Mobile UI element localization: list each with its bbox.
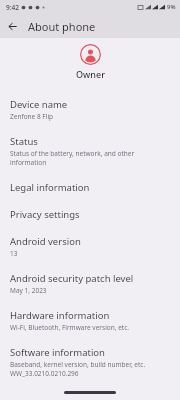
staticText: Wi-Fi, Bluetooth, Firmware version, etc. [10,323,130,332]
button[interactable]: User avatar [80,44,101,65]
staticText: Owner [76,68,105,80]
staticText: May 1, 2023 [10,286,47,295]
staticText: About phone [28,19,96,34]
staticText: Device name [10,98,68,111]
button[interactable]: Android version [0,228,180,265]
staticText: 9:42 [6,3,19,12]
staticText: Baseband, kernel version, build number, … [10,360,146,378]
button[interactable]: Legal information [0,174,180,201]
button[interactable]: Hardware information [0,302,180,339]
staticText: Android version [10,235,81,248]
button[interactable]: Software information [0,339,180,385]
button[interactable]: Privacy settings [0,201,180,228]
button[interactable]: Android security patch level [0,265,180,302]
button[interactable]: Back [3,17,21,35]
button[interactable]: Status [0,128,180,174]
staticText: 13 [10,249,18,258]
button[interactable]: Device name [0,91,180,128]
staticText: 9% [167,3,176,11]
staticText: Software information [10,346,105,359]
staticText: Privacy settings [10,208,80,221]
staticText: Status [10,135,38,148]
staticText: Android security patch level [10,272,134,285]
staticText: Hardware information [10,309,110,322]
staticText: Status of the battery, network, and othe… [10,149,172,167]
staticText: Zenfone 8 Flip [10,112,54,121]
staticText: Legal information [10,181,90,194]
